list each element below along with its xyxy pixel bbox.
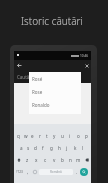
button[interactable]: w xyxy=(22,130,29,142)
staticText: o xyxy=(77,133,80,139)
button[interactable]: c xyxy=(41,154,50,166)
button[interactable]: , xyxy=(25,166,31,178)
button[interactable]: Backspace xyxy=(82,154,91,166)
button[interactable]: s xyxy=(25,142,32,154)
staticText: t xyxy=(46,133,48,139)
button[interactable]: u xyxy=(58,130,66,142)
button[interactable]: o xyxy=(74,130,82,142)
staticText: f xyxy=(42,145,44,151)
button[interactable]: Shift xyxy=(14,154,23,166)
button[interactable]: f xyxy=(39,142,47,154)
staticText: Caută xyxy=(17,74,30,80)
staticText: u xyxy=(61,133,64,139)
button[interactable]: Rose xyxy=(32,85,81,98)
staticText: . xyxy=(76,169,78,175)
button[interactable]: ?123 xyxy=(14,166,25,178)
staticText: a xyxy=(20,145,23,151)
button[interactable]: p xyxy=(82,130,90,142)
button[interactable]: h xyxy=(55,142,63,154)
button[interactable]: Rosé xyxy=(32,72,81,85)
button[interactable]: e xyxy=(29,130,36,142)
staticText: n xyxy=(69,157,72,163)
staticText: y xyxy=(53,133,56,139)
staticText: k xyxy=(74,145,77,151)
button[interactable]: y xyxy=(50,130,58,142)
staticText: 10:46 xyxy=(80,54,89,58)
button[interactable]: x xyxy=(32,154,41,166)
staticText: p xyxy=(85,133,88,139)
button[interactable]: v xyxy=(50,154,58,166)
button[interactable]: l xyxy=(79,142,87,154)
staticText: j xyxy=(66,145,68,151)
staticText: m xyxy=(76,157,81,163)
staticText: b xyxy=(61,157,64,163)
button[interactable]: n xyxy=(66,154,74,166)
button[interactable]: . xyxy=(74,166,80,178)
button[interactable]: Emoji xyxy=(31,166,38,178)
button[interactable]: q xyxy=(15,130,22,142)
button[interactable]: r xyxy=(36,130,43,142)
staticText: Istoric căutări xyxy=(21,14,83,28)
staticText: z xyxy=(26,157,29,163)
staticText: s xyxy=(27,145,30,151)
button[interactable]: g xyxy=(47,142,55,154)
staticText: l xyxy=(82,145,84,151)
staticText: x xyxy=(35,157,38,163)
staticText: Ronaldo xyxy=(32,102,50,108)
staticText: , xyxy=(27,169,29,175)
staticText: h xyxy=(58,145,61,151)
staticText: ?123 xyxy=(16,170,23,174)
button[interactable]: k xyxy=(71,142,79,154)
button[interactable]: d xyxy=(32,142,39,154)
staticText: g xyxy=(50,145,53,151)
button[interactable]: a xyxy=(18,142,25,154)
button[interactable]: Close xyxy=(82,60,91,71)
button[interactable]: b xyxy=(58,154,66,166)
button[interactable]: t xyxy=(43,130,50,142)
staticText: Română xyxy=(50,170,62,174)
button[interactable]: Space xyxy=(39,169,73,175)
button[interactable]: Ronaldo xyxy=(32,98,81,111)
staticText: r xyxy=(39,133,41,139)
staticText: v xyxy=(53,157,56,163)
staticText: e xyxy=(31,133,34,139)
button[interactable]: Back xyxy=(15,60,24,71)
button[interactable]: i xyxy=(66,130,74,142)
button[interactable]: z xyxy=(23,154,32,166)
button[interactable]: m xyxy=(74,154,82,166)
staticText: q xyxy=(17,133,20,139)
staticText: Rosé xyxy=(32,76,43,82)
staticText: w xyxy=(24,133,28,139)
staticText: c xyxy=(44,157,47,163)
button[interactable]: j xyxy=(63,142,71,154)
staticText: d xyxy=(34,145,37,151)
staticText: i xyxy=(69,133,71,139)
staticText: Rose xyxy=(32,89,43,95)
button[interactable]: Search xyxy=(80,168,88,176)
